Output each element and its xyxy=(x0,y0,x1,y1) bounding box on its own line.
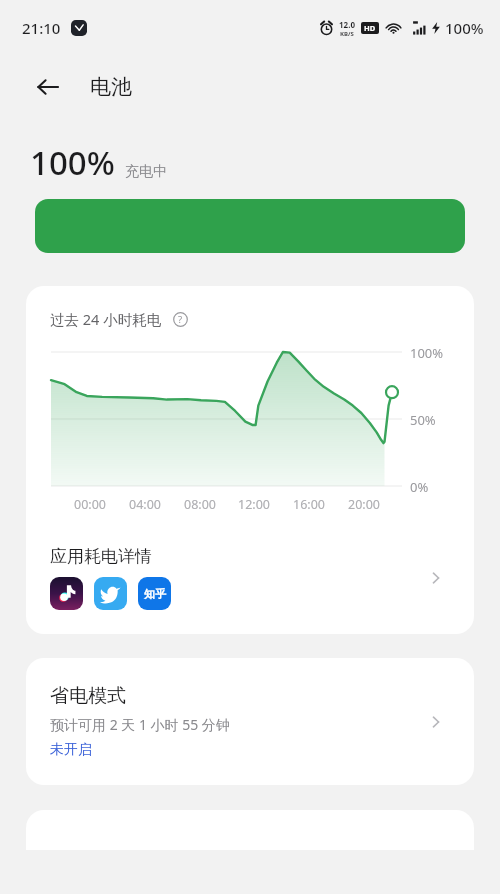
staticText: KB/S xyxy=(340,30,354,38)
staticText: 00:00 xyxy=(74,496,118,513)
staticText: 过去 24 小时耗电 xyxy=(50,309,162,329)
staticText: 充电中 xyxy=(125,163,167,181)
staticText: 20:00 xyxy=(348,496,392,513)
staticText: 0% xyxy=(410,478,429,494)
button[interactable]: Back xyxy=(28,67,68,107)
staticText: 100% xyxy=(410,344,444,360)
staticText: 04:00 xyxy=(129,496,173,513)
staticText: 预计可用 2 天 1 小时 55 分钟 xyxy=(50,715,230,734)
button[interactable]: 应用耗电详情 xyxy=(26,546,474,610)
staticText: 21:10 xyxy=(22,18,61,38)
staticText: 12.0 xyxy=(339,19,355,30)
staticText: ? xyxy=(178,313,183,326)
staticText: 100% xyxy=(445,18,484,38)
staticText: 100% xyxy=(30,140,115,185)
staticText: 应用耗电详情 xyxy=(50,546,152,567)
staticText: 50% xyxy=(410,411,436,427)
staticText: 16:00 xyxy=(293,496,337,513)
button[interactable]: 帮助 xyxy=(169,308,191,330)
staticText: 12:00 xyxy=(238,496,282,513)
button[interactable]: 省电模式 xyxy=(26,658,474,785)
staticText: 知乎 xyxy=(144,587,166,601)
staticText: 省电模式 xyxy=(50,684,126,708)
staticText: 未开启 xyxy=(50,741,92,759)
staticText: 电池 xyxy=(90,74,132,100)
staticText: HD xyxy=(364,23,376,33)
staticText: 08:00 xyxy=(184,496,228,513)
